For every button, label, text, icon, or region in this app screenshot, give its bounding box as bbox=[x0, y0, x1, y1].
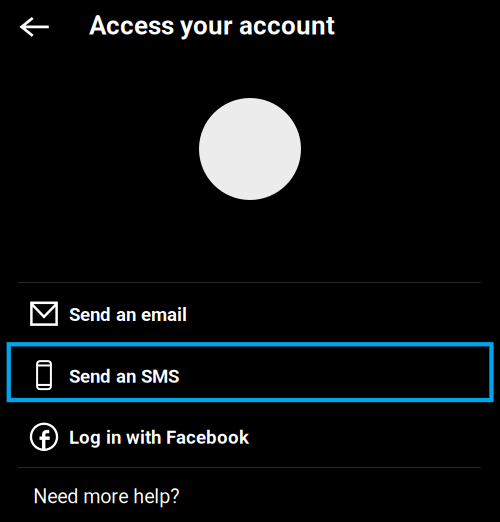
staticText: Send an email bbox=[69, 304, 187, 326]
staticText: Need more help? bbox=[33, 485, 179, 508]
staticText: Log in with Facebook bbox=[69, 426, 249, 448]
button[interactable]: Log in with Facebook bbox=[0, 406, 500, 466]
button[interactable]: Need more help? bbox=[0, 469, 500, 522]
button[interactable]: Back bbox=[5, 1, 63, 53]
staticText: Send an SMS bbox=[69, 365, 179, 387]
button[interactable]: Send an SMS bbox=[7, 342, 494, 402]
staticText: Access your account bbox=[89, 10, 335, 41]
button[interactable]: Send an email bbox=[0, 283, 500, 343]
